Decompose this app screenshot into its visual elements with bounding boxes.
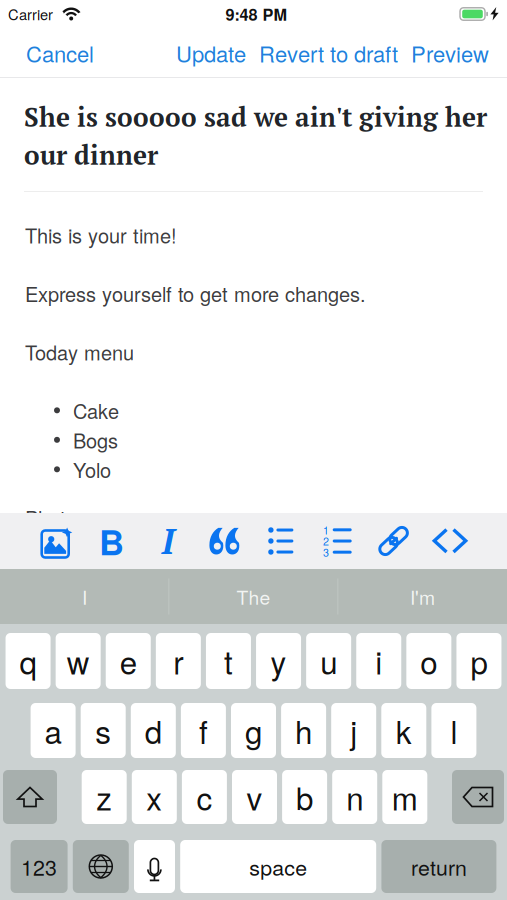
staticText: 3 bbox=[323, 545, 329, 560]
button[interactable]: l bbox=[431, 703, 476, 758]
staticText: s bbox=[95, 708, 111, 753]
staticText: i bbox=[375, 639, 382, 683]
button[interactable]: 123 bbox=[11, 840, 68, 893]
staticText: space bbox=[249, 851, 307, 882]
button[interactable]: Shift bbox=[3, 770, 57, 824]
button[interactable]: Update bbox=[170, 25, 252, 81]
staticText: She is sooooo sad we ain't giving her bbox=[24, 99, 487, 134]
staticText: return bbox=[411, 851, 467, 882]
staticText: 9:48 PM bbox=[225, 2, 287, 26]
staticText: b bbox=[296, 775, 313, 819]
button[interactable]: v bbox=[232, 770, 277, 824]
button[interactable]: e bbox=[106, 633, 151, 689]
button[interactable]: q bbox=[6, 633, 51, 689]
staticText: Revert to draft bbox=[259, 37, 398, 69]
staticText: I bbox=[161, 518, 174, 564]
staticText: v bbox=[246, 775, 262, 819]
button[interactable]: Dictation bbox=[134, 840, 175, 893]
staticText: k bbox=[396, 708, 412, 753]
button[interactable]: d bbox=[131, 703, 176, 758]
button[interactable]: y bbox=[256, 633, 301, 689]
button[interactable]: I'm bbox=[338, 569, 506, 624]
button[interactable]: f bbox=[181, 703, 226, 758]
button[interactable]: r bbox=[156, 633, 201, 689]
staticText: p bbox=[470, 639, 487, 683]
button[interactable]: h bbox=[281, 703, 326, 758]
button[interactable]: i bbox=[356, 633, 401, 689]
staticText: Express yourself to get more changes. bbox=[25, 279, 366, 308]
staticText: f bbox=[199, 708, 208, 753]
staticText: d bbox=[145, 708, 162, 753]
button[interactable]: Numbered list bbox=[309, 513, 365, 569]
button[interactable]: n bbox=[332, 770, 377, 824]
button[interactable]: The bbox=[169, 569, 337, 624]
staticText: Bogs bbox=[73, 425, 118, 454]
staticText: g bbox=[245, 708, 262, 753]
staticText: m bbox=[392, 775, 418, 819]
button[interactable]: u bbox=[306, 633, 351, 689]
button[interactable]: return bbox=[381, 840, 496, 893]
staticText: 2 bbox=[323, 533, 329, 549]
button[interactable]: Italic bbox=[140, 513, 196, 569]
button[interactable]: k bbox=[381, 703, 426, 758]
staticText: This is your time! bbox=[25, 220, 177, 249]
button[interactable]: g bbox=[231, 703, 276, 758]
staticText: Yolo bbox=[73, 455, 111, 484]
staticText: t bbox=[224, 639, 233, 683]
button[interactable]: Insert link bbox=[365, 513, 422, 569]
staticText: I'm bbox=[410, 583, 435, 610]
button[interactable]: Blockquote bbox=[196, 513, 253, 569]
staticText: 1 bbox=[323, 522, 329, 537]
staticText: j bbox=[350, 708, 357, 753]
staticText: Phot bbox=[25, 503, 66, 532]
staticText: n bbox=[346, 775, 363, 819]
button[interactable]: a bbox=[31, 703, 76, 758]
button[interactable]: HTML source bbox=[422, 513, 478, 569]
staticText: w bbox=[67, 639, 90, 683]
button[interactable]: z bbox=[82, 770, 127, 824]
staticText: our dinner bbox=[24, 137, 158, 172]
button[interactable]: Revert to draft bbox=[253, 25, 404, 81]
staticText: Update bbox=[176, 37, 246, 69]
button[interactable]: x bbox=[132, 770, 177, 824]
button[interactable]: Bulleted list bbox=[253, 513, 309, 569]
staticText: c bbox=[196, 775, 212, 819]
button[interactable]: m bbox=[382, 770, 427, 824]
button[interactable]: t bbox=[206, 633, 251, 689]
staticText: Preview bbox=[411, 37, 489, 69]
button[interactable]: Delete bbox=[452, 770, 504, 824]
staticText: B bbox=[99, 516, 124, 566]
button[interactable]: space bbox=[180, 840, 376, 893]
staticText: a bbox=[45, 708, 62, 753]
staticText: 123 bbox=[21, 851, 57, 882]
staticText: Carrier bbox=[8, 3, 53, 24]
button[interactable]: w bbox=[56, 633, 101, 689]
button[interactable]: Preview bbox=[405, 25, 495, 81]
staticText: x bbox=[146, 775, 162, 819]
staticText: h bbox=[295, 708, 312, 753]
button[interactable]: c bbox=[182, 770, 227, 824]
button[interactable]: Insert media bbox=[27, 513, 83, 569]
button[interactable]: b bbox=[282, 770, 327, 824]
staticText: r bbox=[173, 639, 183, 683]
staticText: I bbox=[82, 583, 87, 610]
staticText: Today menu bbox=[25, 337, 134, 366]
button[interactable]: s bbox=[81, 703, 126, 758]
staticText: z bbox=[96, 775, 112, 819]
button[interactable]: Next keyboard bbox=[73, 840, 129, 893]
button[interactable]: p bbox=[456, 633, 501, 689]
staticText: o bbox=[420, 639, 437, 683]
staticText: y bbox=[271, 639, 287, 683]
staticText: The bbox=[236, 583, 270, 610]
staticText: u bbox=[320, 639, 337, 683]
staticText: q bbox=[20, 639, 37, 683]
button[interactable]: o bbox=[406, 633, 451, 689]
staticText: Cake bbox=[73, 396, 119, 425]
staticText: Cancel bbox=[26, 37, 94, 69]
button[interactable]: Bold bbox=[83, 513, 140, 569]
button[interactable]: j bbox=[331, 703, 376, 758]
button[interactable]: Cancel bbox=[20, 25, 100, 81]
staticText: e bbox=[120, 639, 137, 683]
staticText: l bbox=[450, 708, 457, 753]
